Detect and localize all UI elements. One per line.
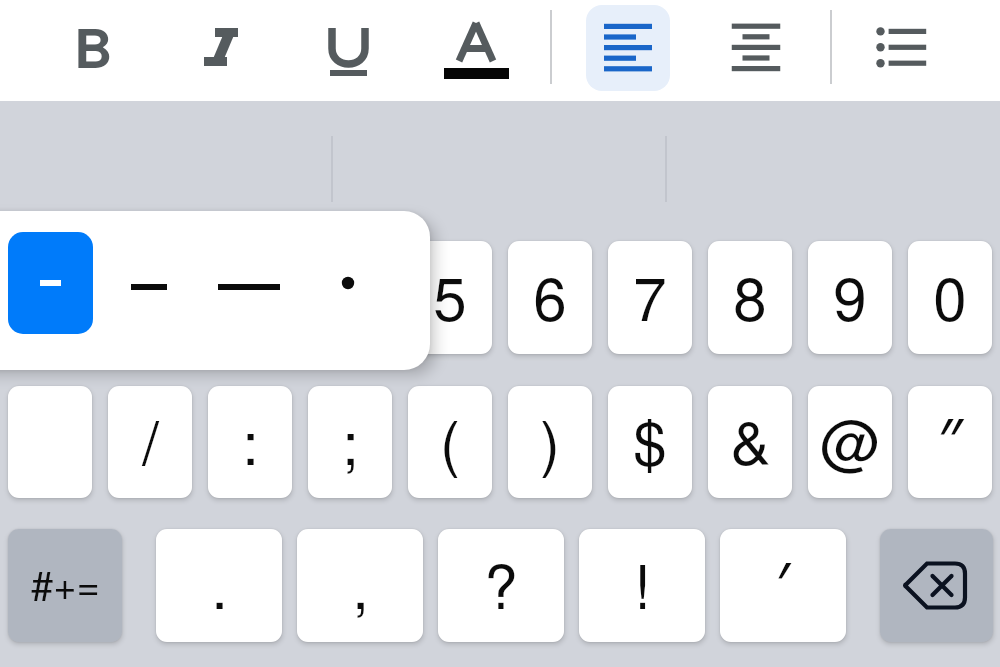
button[interactable]: Text colour	[431, 0, 521, 101]
staticText: 0	[933, 252, 967, 338]
staticText: 7	[633, 252, 667, 338]
button[interactable]: Bold	[48, 0, 138, 101]
button[interactable]: #+=	[8, 529, 122, 642]
staticText: 2	[133, 252, 167, 338]
button[interactable]: Hyphen	[8, 232, 93, 334]
button[interactable]: 7	[608, 241, 692, 354]
button[interactable]: $	[608, 386, 692, 498]
button[interactable]: :	[208, 386, 292, 498]
staticText: 9	[833, 252, 867, 338]
staticText: ″	[938, 398, 963, 480]
staticText: :	[242, 396, 259, 482]
staticText: ,	[352, 540, 369, 626]
button[interactable]: Em dash	[206, 232, 291, 334]
staticText: ?	[484, 540, 518, 626]
button[interactable]: 8	[708, 241, 792, 354]
button[interactable]: ;	[308, 386, 392, 498]
staticText: 5	[433, 252, 467, 338]
staticText: !	[634, 540, 651, 626]
button[interactable]: &	[708, 386, 792, 498]
staticText: (	[440, 396, 460, 482]
button[interactable]: .	[156, 529, 282, 642]
button[interactable]: 6	[508, 241, 592, 354]
button[interactable]: ″	[908, 386, 992, 498]
button[interactable]: Backspace	[880, 529, 993, 642]
button[interactable]: Align centre	[711, 5, 801, 91]
staticText: .	[211, 540, 228, 626]
button[interactable]: Underline	[303, 0, 393, 101]
button[interactable]: Align left	[586, 5, 670, 91]
button[interactable]: @	[808, 386, 892, 498]
staticText: /	[142, 396, 159, 482]
button[interactable]: ,	[297, 529, 423, 642]
button[interactable]: 0	[908, 241, 992, 354]
button[interactable]: 9	[808, 241, 892, 354]
staticText: @	[820, 396, 881, 482]
button[interactable]: 4	[308, 241, 392, 354]
staticText: ′	[776, 542, 790, 624]
staticText: 8	[733, 252, 767, 338]
staticText: &	[730, 396, 771, 482]
staticText: #+=	[31, 554, 100, 611]
button[interactable]	[8, 386, 92, 498]
button[interactable]: )	[508, 386, 592, 498]
button[interactable]: 1	[8, 241, 92, 354]
button[interactable]: Bulleted list	[858, 5, 948, 91]
button[interactable]: 2	[108, 241, 192, 354]
button[interactable]: Bullet	[306, 232, 391, 334]
button[interactable]: /	[108, 386, 192, 498]
staticText: 4	[333, 252, 367, 338]
staticText: )	[540, 396, 560, 482]
button[interactable]: ′	[720, 529, 846, 642]
staticText: 6	[533, 252, 567, 338]
staticText: 3	[233, 252, 267, 338]
button[interactable]: En dash	[106, 232, 191, 334]
staticText: 1	[33, 252, 67, 338]
button[interactable]: 3	[208, 241, 292, 354]
button[interactable]: ?	[438, 529, 564, 642]
button[interactable]: (	[408, 386, 492, 498]
staticText: ;	[342, 396, 359, 482]
staticText: $	[633, 396, 667, 482]
button[interactable]: 5	[408, 241, 492, 354]
button[interactable]: !	[579, 529, 705, 642]
staticText: B	[74, 8, 113, 84]
button[interactable]: Italic	[176, 0, 266, 101]
